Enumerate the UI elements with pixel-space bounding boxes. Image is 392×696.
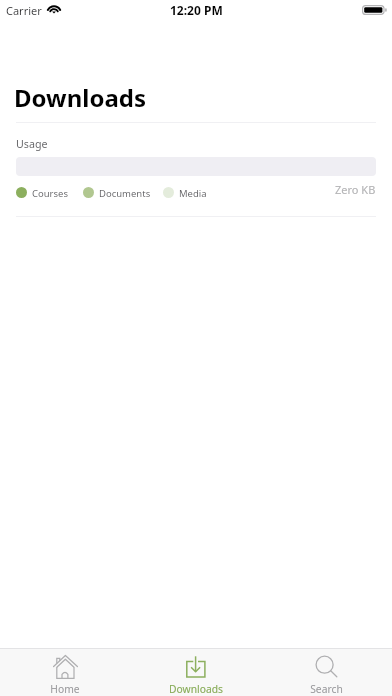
staticText: Documents <box>99 187 151 200</box>
other: Battery full <box>362 5 388 15</box>
staticText: 12:20 PM <box>170 2 223 18</box>
button[interactable]: Documents <box>83 185 151 199</box>
staticText: Usage <box>16 137 48 152</box>
staticText: Home <box>50 682 80 696</box>
staticText: Search <box>310 682 343 696</box>
staticText: Carrier <box>6 3 42 18</box>
staticText: Courses <box>32 187 69 200</box>
other: Wi-Fi signal <box>47 4 61 14</box>
button[interactable]: Downloads <box>130 649 261 696</box>
button[interactable]: Search <box>261 649 392 696</box>
button[interactable]: Media <box>163 185 207 199</box>
staticText: Media <box>179 187 207 200</box>
staticText: Downloads <box>14 81 146 114</box>
staticText: Downloads <box>169 682 223 696</box>
button[interactable]: Home <box>0 649 130 696</box>
button[interactable]: Courses <box>16 185 69 199</box>
staticText: Zero KB <box>335 182 376 196</box>
